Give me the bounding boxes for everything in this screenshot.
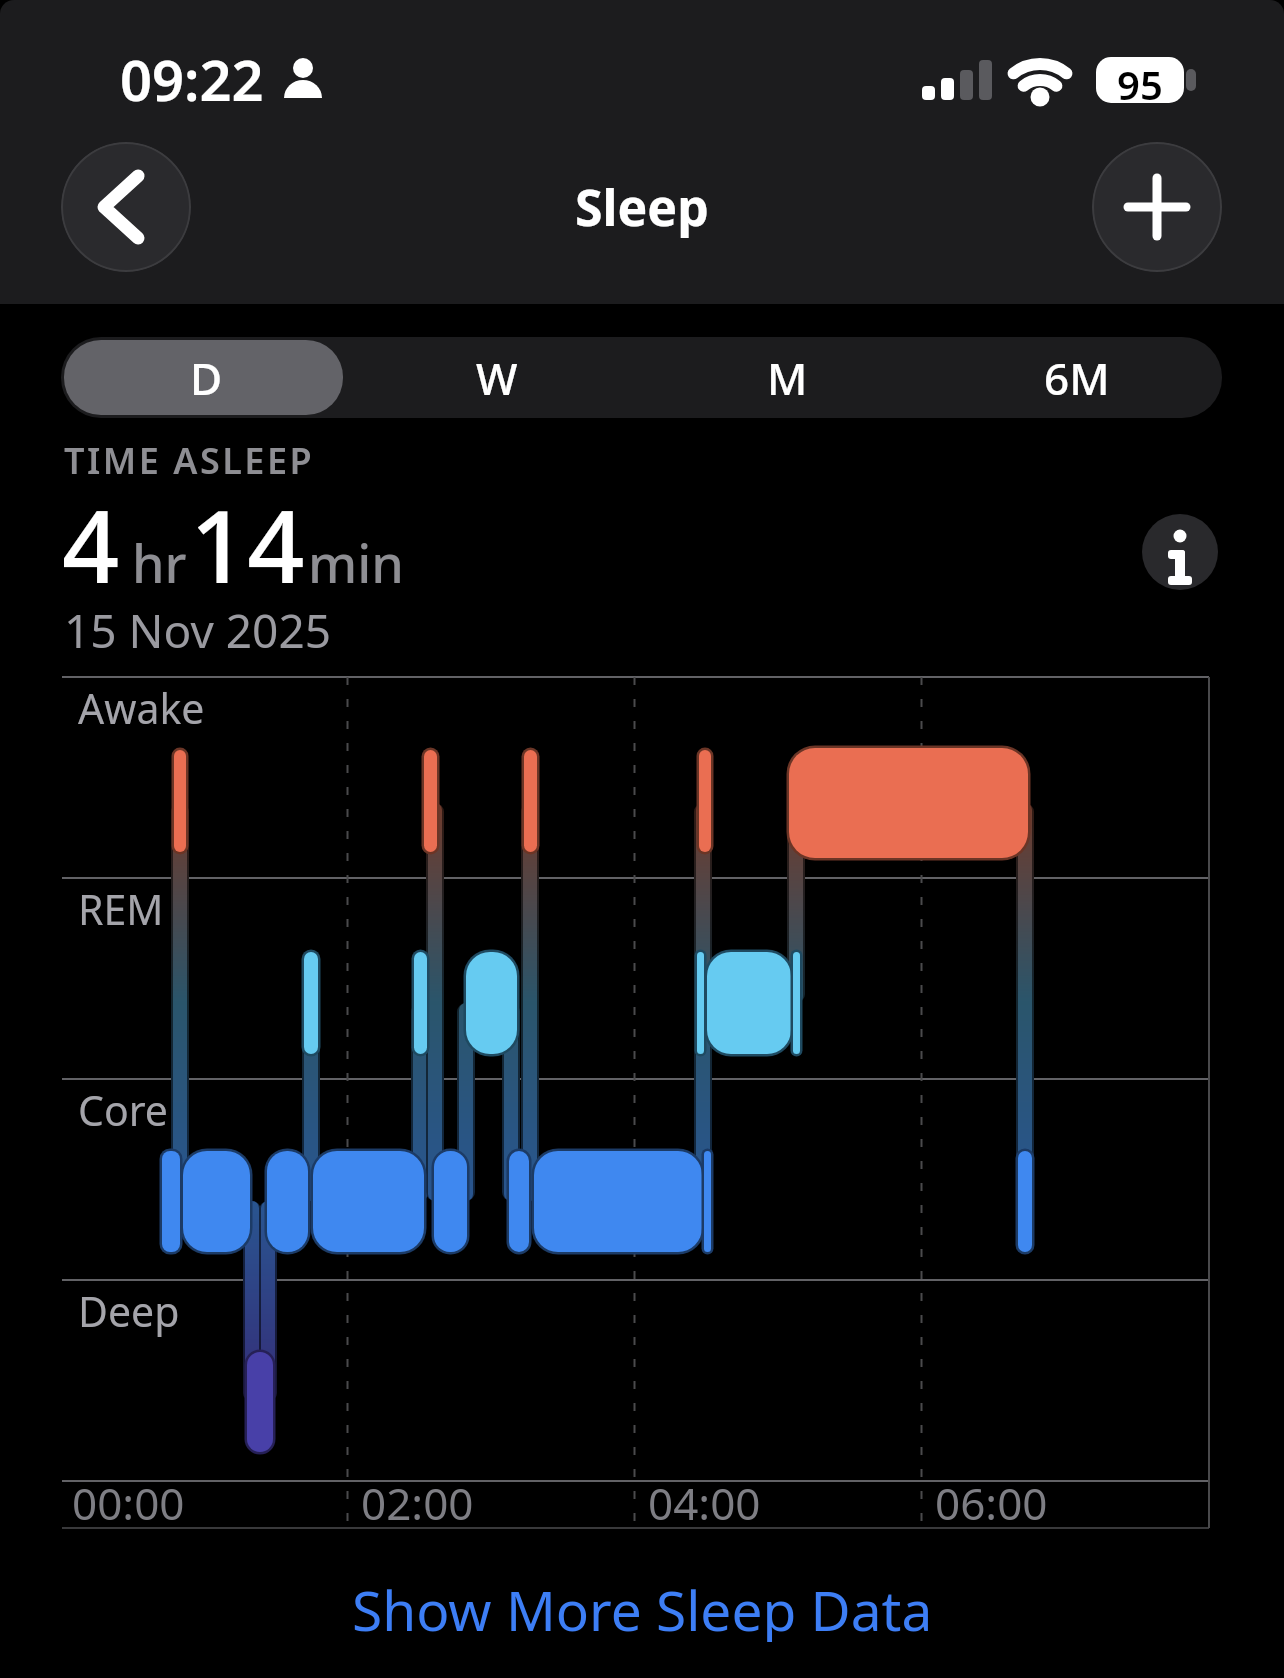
button[interactable]: Show More Sleep Data — [352, 1572, 933, 1642]
button[interactable]: M — [642, 337, 932, 418]
button[interactable]: W — [352, 337, 642, 418]
staticText: min — [308, 527, 404, 598]
button[interactable]: D — [61, 337, 352, 418]
staticText: 95 — [1117, 57, 1163, 103]
staticText: 15 Nov 2025 — [64, 599, 332, 662]
staticText: W — [476, 348, 518, 408]
staticText: 04:00 — [648, 1473, 761, 1533]
staticText: REM — [78, 881, 164, 937]
button[interactable] — [1142, 514, 1218, 590]
button[interactable] — [61, 142, 191, 272]
button[interactable]: 6M — [932, 337, 1222, 418]
staticText: Deep — [78, 1283, 180, 1339]
staticText: 06:00 — [935, 1473, 1048, 1533]
staticText: 09:22 — [120, 41, 264, 117]
staticText: 14 — [190, 476, 305, 612]
staticText: Sleep — [575, 173, 709, 241]
staticText: 4 — [62, 476, 120, 612]
staticText: Core — [78, 1082, 168, 1138]
staticText: Awake — [78, 680, 205, 736]
staticText: 00:00 — [72, 1473, 185, 1533]
staticText: hr — [132, 527, 187, 598]
button[interactable] — [1092, 142, 1222, 272]
staticText: 6M — [1044, 348, 1110, 408]
staticText: M — [767, 348, 808, 408]
staticText: D — [190, 348, 223, 408]
staticText: TIME ASLEEP — [64, 436, 315, 485]
staticText: 02:00 — [361, 1473, 474, 1533]
